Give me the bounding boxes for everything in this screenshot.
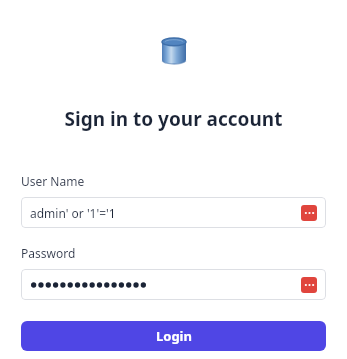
- staticText: Login: [156, 327, 192, 345]
- button[interactable]: Login: [21, 321, 326, 351]
- staticText: Password: [21, 245, 76, 261]
- button[interactable]: Autofill: [301, 277, 317, 293]
- staticText: Sign in to your account: [0, 106, 347, 132]
- staticText: User Name: [21, 173, 85, 189]
- staticText: admin' or '1'='1: [30, 205, 116, 221]
- button[interactable]: Password field: [21, 269, 326, 300]
- button[interactable]: Autofill: [301, 205, 317, 221]
- button[interactable]: User Name field: [21, 197, 326, 228]
